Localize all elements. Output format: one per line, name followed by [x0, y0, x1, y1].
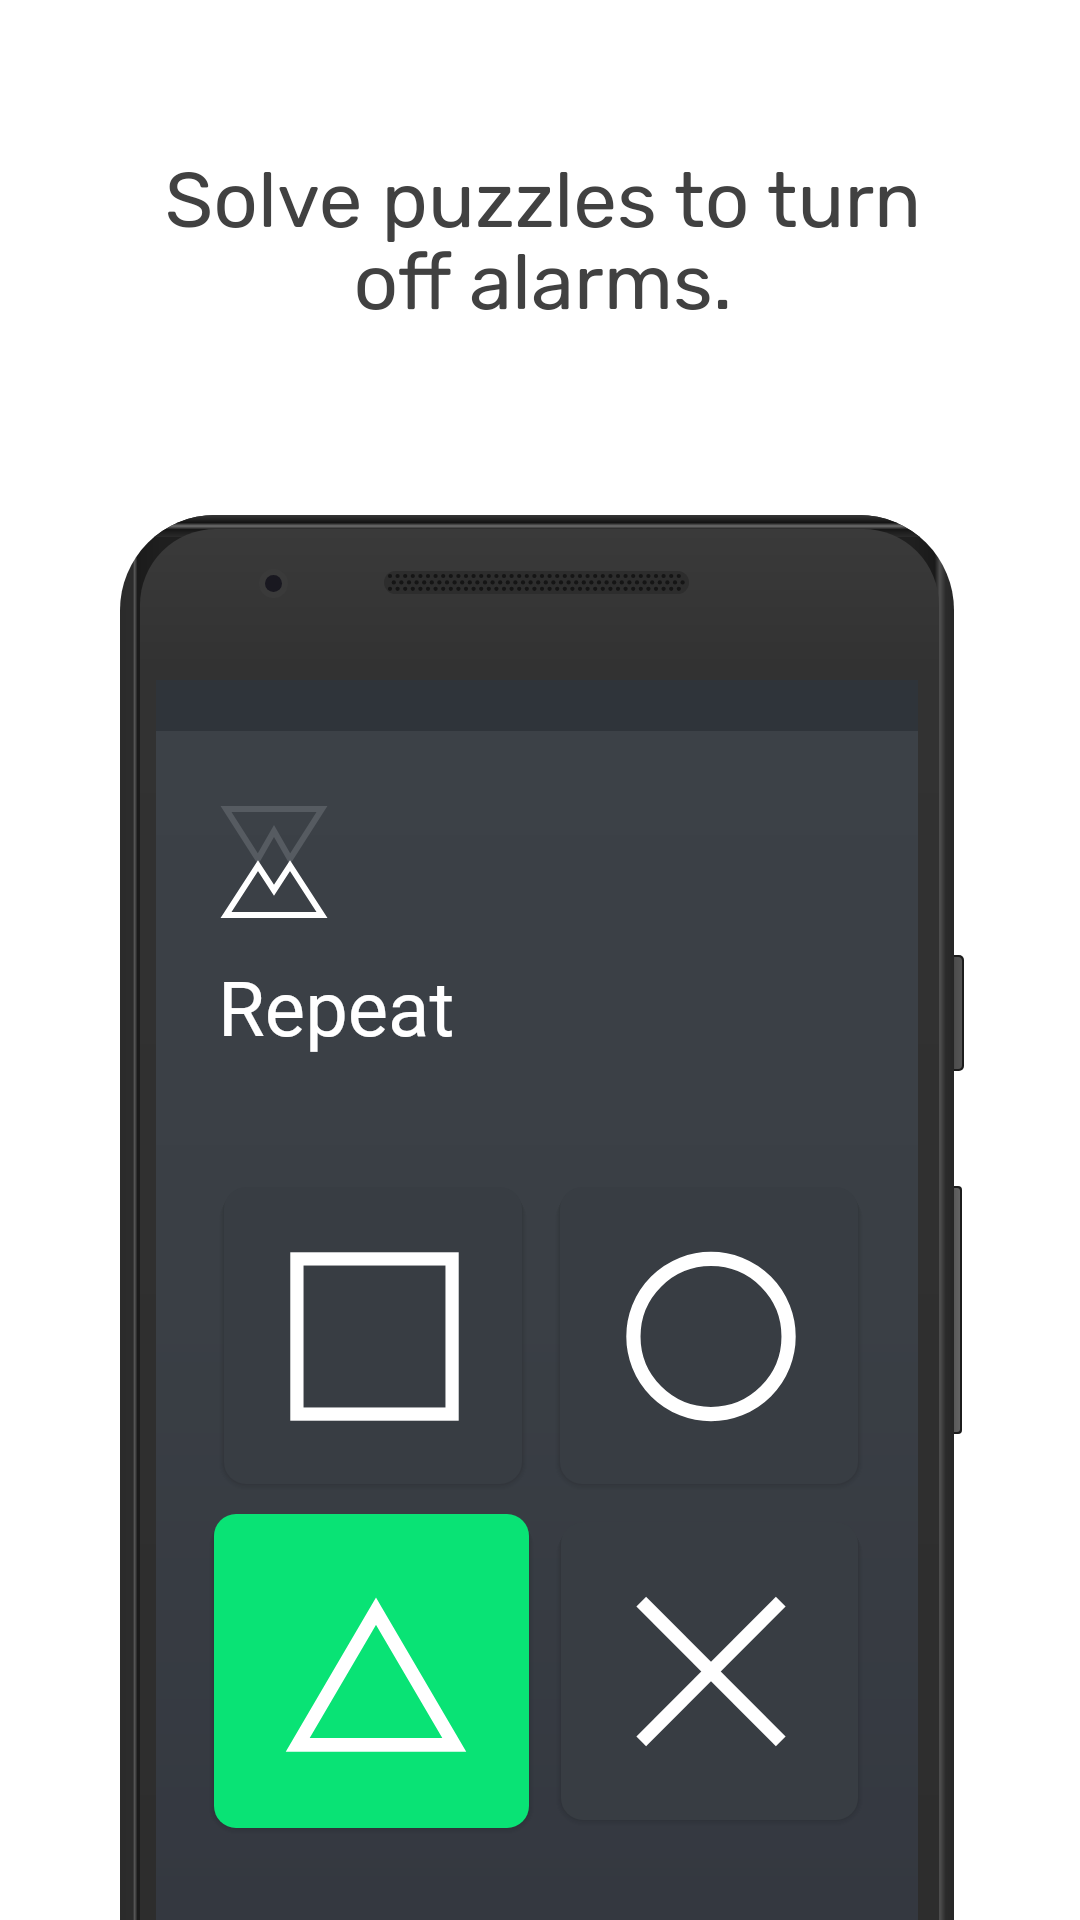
button[interactable]: Triangle: [214, 1514, 529, 1828]
button[interactable]: Square: [224, 1187, 522, 1484]
staticText: Solve puzzles to turn off alarms.: [3, 154, 1080, 328]
button[interactable]: Close: [561, 1522, 858, 1820]
button[interactable]: Circle: [560, 1187, 858, 1484]
staticText: Repeat: [218, 965, 455, 1054]
